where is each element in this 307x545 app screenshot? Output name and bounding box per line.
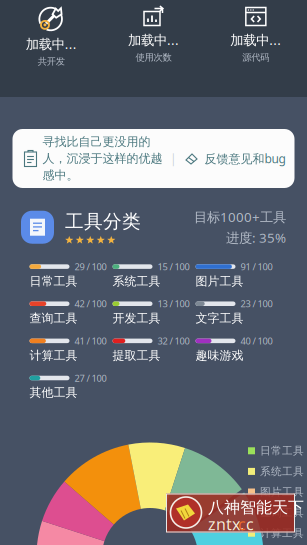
staticText: 反馈意见和bug (204, 150, 285, 166)
staticText: 开发工具 (112, 311, 160, 326)
staticText: 其他工具 (29, 385, 77, 400)
staticText: c (246, 513, 254, 535)
staticText: 八神智能天下 (208, 497, 304, 517)
staticText: 查询工具 (260, 506, 304, 519)
button[interactable]: 源代码 (205, 6, 307, 63)
staticText: 27 / 100 (74, 372, 106, 384)
staticText: 32 / 100 (157, 335, 189, 347)
staticText: 系统工具 (112, 274, 160, 288)
staticText: 29 / 100 (74, 260, 106, 273)
staticText: 使用次数 (135, 52, 171, 63)
button[interactable]: 寻找比自己更没用的 (12, 129, 294, 188)
staticText: 91 / 100 (240, 260, 272, 273)
staticText: 15 / 100 (157, 260, 189, 273)
staticText: 提取工具 (112, 348, 160, 363)
staticText: 图片工具 (195, 274, 243, 288)
staticText: 加载中... (26, 35, 77, 53)
staticText: 图片工具 (260, 485, 304, 498)
staticText: 41 / 100 (74, 335, 106, 347)
staticText: 感中。 (42, 168, 78, 183)
staticText: 查询工具 (29, 311, 77, 326)
staticText: 人，沉浸于这样的优越 (42, 151, 162, 166)
staticText: 计算工具 (260, 527, 304, 540)
staticText: 工具分类 (65, 210, 141, 233)
button[interactable]: 使用次数 (102, 6, 205, 63)
staticText: 寻找比自己更没用的 (42, 134, 150, 149)
staticText: 日常工具 (260, 444, 304, 457)
staticText: 趣味游戏 (195, 348, 243, 363)
staticText: 计算工具 (29, 348, 77, 363)
staticText: zntx. (208, 513, 244, 535)
staticText: c (238, 513, 246, 535)
button[interactable]: 共开发 (0, 6, 102, 67)
staticText: 系统工具 (260, 465, 304, 478)
staticText: 进度: 35% (226, 229, 286, 246)
staticText: | (170, 150, 177, 166)
staticText: 23 / 100 (240, 297, 272, 310)
staticText: 日常工具 (29, 274, 77, 288)
staticText: 加载中... (128, 31, 179, 49)
staticText: 目标1000+工具 (194, 208, 286, 226)
staticText: 40 / 100 (240, 335, 272, 347)
staticText: 加载中... (230, 31, 281, 49)
staticText: 13 / 100 (157, 297, 189, 310)
staticText: 共开发 (38, 56, 65, 67)
staticText: 42 / 100 (74, 297, 106, 310)
staticText: 源代码 (242, 52, 269, 63)
staticText: 文字工具 (195, 311, 243, 326)
